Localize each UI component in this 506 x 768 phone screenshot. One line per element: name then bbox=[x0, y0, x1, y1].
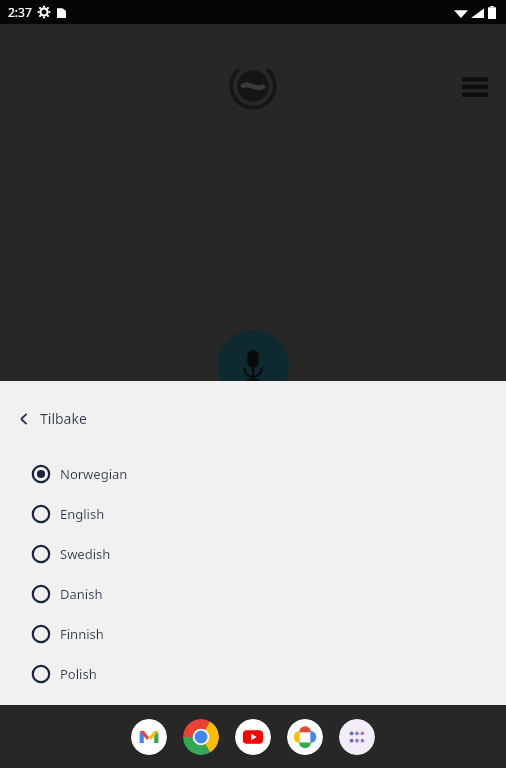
staticText: Norwegian bbox=[60, 465, 128, 483]
button[interactable]: Gmail bbox=[131, 719, 167, 755]
staticText: Tilbake bbox=[40, 409, 87, 428]
staticText: English bbox=[60, 505, 105, 523]
button[interactable]: Swedish bbox=[0, 534, 506, 574]
staticText: 2:37 bbox=[8, 4, 32, 20]
button[interactable]: Logo bbox=[227, 60, 279, 112]
button[interactable]: English bbox=[0, 494, 506, 534]
staticText: Swedish bbox=[60, 545, 111, 563]
button[interactable]: Microphone bbox=[217, 330, 289, 402]
staticText: Polish bbox=[60, 665, 97, 683]
button[interactable]: Google Photos bbox=[287, 719, 323, 755]
button[interactable]: Norwegian bbox=[0, 454, 506, 494]
button[interactable]: Polish bbox=[0, 654, 506, 694]
staticText: Finnish bbox=[60, 625, 104, 643]
button[interactable]: All apps bbox=[339, 719, 375, 755]
button[interactable]: Danish bbox=[0, 574, 506, 614]
button[interactable]: Menu bbox=[458, 70, 492, 104]
button[interactable]: YouTube bbox=[235, 719, 271, 755]
button[interactable]: Tilbake bbox=[18, 409, 87, 428]
staticText: Danish bbox=[60, 585, 103, 603]
button[interactable]: Chrome bbox=[183, 719, 219, 755]
button[interactable]: Finnish bbox=[0, 614, 506, 654]
